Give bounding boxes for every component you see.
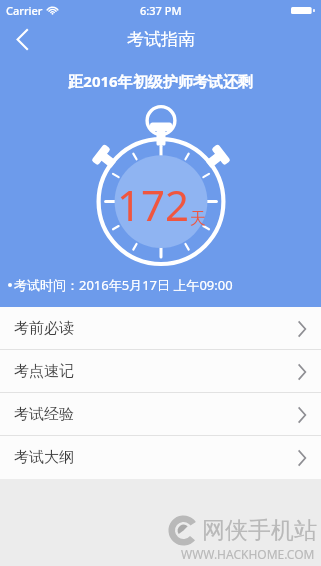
staticText: 网侠手机站 bbox=[202, 516, 317, 545]
button[interactable]: 考试大纲 bbox=[0, 436, 321, 479]
staticText: WWW.HACKHOME.COM bbox=[181, 546, 315, 562]
staticText: 考试经验 bbox=[14, 405, 74, 424]
button[interactable]: 考试经验 bbox=[0, 393, 321, 436]
button[interactable]: 考前必读 bbox=[0, 307, 321, 350]
staticText: 考点速记 bbox=[14, 362, 74, 381]
staticText: Carrier bbox=[6, 3, 43, 18]
staticText: 天 bbox=[190, 209, 206, 229]
staticText: 考试时间：2016年5月17日 上午09:00 bbox=[14, 276, 233, 294]
staticText: 考试指南 bbox=[127, 29, 195, 50]
staticText: 考前必读 bbox=[14, 319, 74, 338]
staticText: 172 bbox=[117, 176, 190, 233]
staticText: 6:37 PM bbox=[140, 3, 182, 18]
button[interactable]: 考点速记 bbox=[0, 350, 321, 393]
staticText: 距2016年初级护师考试还剩 bbox=[68, 71, 253, 91]
button[interactable]: Back bbox=[0, 20, 44, 58]
staticText: 考试大纲 bbox=[14, 448, 74, 467]
